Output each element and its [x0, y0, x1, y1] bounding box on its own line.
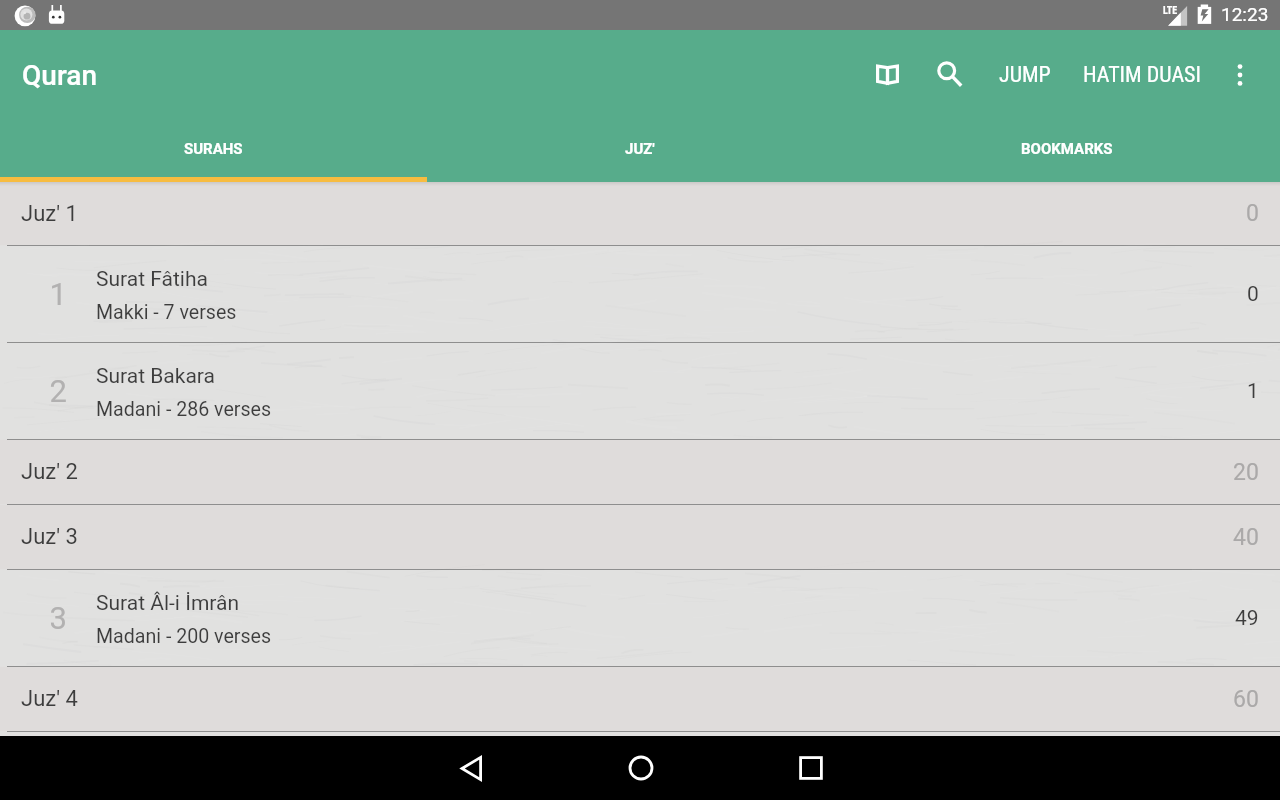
staticText: JUZ'	[625, 140, 655, 158]
button[interactable]: JUZ'	[426, 122, 853, 182]
button[interactable]: More options	[1218, 53, 1262, 97]
button[interactable]: Recent apps	[771, 736, 851, 800]
staticText: 20	[1233, 459, 1259, 486]
button[interactable]: 1	[0, 246, 1280, 342]
button[interactable]: Back	[431, 736, 511, 800]
button[interactable]: Open book	[863, 50, 911, 98]
button[interactable]: SURAHS	[0, 122, 426, 182]
staticText: Madani - 286 verses	[96, 398, 272, 421]
staticText: Surat Fâtiha	[96, 267, 208, 292]
staticText: Juz' 3	[21, 524, 78, 550]
button[interactable]: Juz' 1	[0, 182, 1280, 245]
staticText: Juz' 1	[21, 201, 78, 227]
staticText: 2	[0, 373, 67, 409]
staticText: 0	[1247, 282, 1259, 307]
staticText: Madani - 200 verses	[96, 625, 272, 648]
button[interactable]: Juz' 4	[0, 667, 1280, 731]
staticText: SURAHS	[184, 140, 243, 158]
staticText: BOOKMARKS	[1021, 140, 1113, 158]
button[interactable]: Juz' 2	[0, 440, 1280, 504]
staticText: HATIM DUASI	[1083, 62, 1202, 88]
staticText: 40	[1233, 524, 1259, 551]
staticText: Makki - 7 verses	[96, 301, 237, 324]
staticText: LTE	[1163, 5, 1178, 17]
staticText: 1	[1247, 379, 1259, 404]
button[interactable]: Home	[601, 736, 681, 800]
staticText: 60	[1233, 686, 1259, 713]
button[interactable]: Search	[925, 50, 973, 98]
staticText: 3	[0, 600, 67, 636]
staticText: JUMP	[999, 62, 1051, 88]
staticText: Juz' 2	[21, 459, 78, 485]
staticText: 1	[0, 276, 67, 312]
staticText: 0	[1246, 200, 1259, 227]
button[interactable]: HATIM DUASI	[1066, 39, 1218, 111]
staticText: Juz' 4	[21, 686, 78, 712]
button[interactable]: JUMP	[985, 39, 1065, 111]
staticText: Surat Bakara	[96, 364, 215, 389]
button[interactable]: 3	[0, 570, 1280, 666]
staticText: Surat Âl-i İmrân	[96, 591, 240, 616]
staticText: Quran	[22, 59, 98, 92]
button[interactable]: Juz' 3	[0, 505, 1280, 569]
staticText: 49	[1235, 606, 1259, 631]
button[interactable]: 2	[0, 343, 1280, 439]
staticText: 12:23	[1221, 3, 1269, 25]
button[interactable]: BOOKMARKS	[853, 122, 1280, 182]
